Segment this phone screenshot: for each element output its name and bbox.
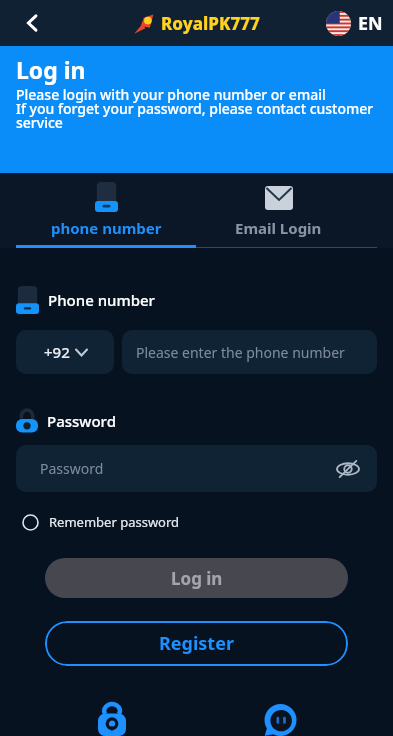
staticText: Please enter the phone number xyxy=(136,343,345,362)
staticText: EN xyxy=(358,11,383,36)
button[interactable] xyxy=(98,704,126,736)
staticText: Email Login xyxy=(235,218,322,238)
button[interactable]: Register xyxy=(45,621,348,666)
staticText: +92 xyxy=(44,342,70,362)
staticText: Log in xyxy=(16,54,86,85)
staticText: Log in xyxy=(171,567,223,590)
staticText: phone number xyxy=(51,218,162,238)
staticText: Remember password xyxy=(49,513,180,531)
button[interactable]: Log in xyxy=(45,558,348,598)
button[interactable]: Password xyxy=(16,445,377,492)
button[interactable]: Email Login xyxy=(196,173,377,248)
staticText: Register xyxy=(159,631,234,656)
staticText: RoyalPK777 xyxy=(161,12,260,35)
staticText: Password xyxy=(47,411,116,431)
button[interactable] xyxy=(264,704,297,736)
staticText: Phone number xyxy=(48,290,155,310)
button[interactable]: phone number xyxy=(16,173,196,248)
button[interactable]: Please enter the phone number xyxy=(122,330,377,374)
staticText: Please login with your phone number or e… xyxy=(16,85,374,132)
button[interactable]: EN xyxy=(326,11,383,36)
button[interactable] xyxy=(16,7,48,39)
button[interactable]: +92 xyxy=(16,330,114,374)
staticText: Password xyxy=(40,459,104,478)
button[interactable]: Remember password xyxy=(16,513,180,531)
